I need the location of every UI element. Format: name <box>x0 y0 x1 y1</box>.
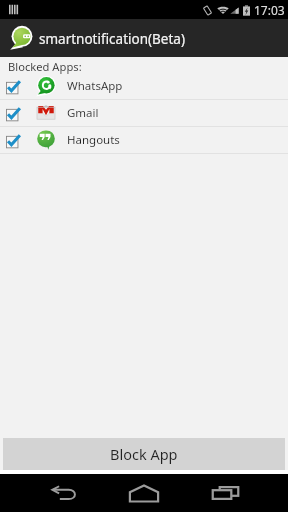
button[interactable]: Block App <box>3 438 285 470</box>
staticText: 17:03 <box>254 2 285 18</box>
button[interactable]: Back <box>32 474 96 512</box>
button[interactable]: WhatsApp <box>0 72 288 99</box>
button[interactable]: Gmail <box>0 99 288 126</box>
staticText: WhatsApp <box>67 78 123 94</box>
staticText: Blocked Apps: <box>8 59 82 74</box>
staticText: Gmail <box>67 105 99 121</box>
button[interactable]: Hangouts <box>0 126 288 153</box>
button[interactable]: Home <box>112 474 176 512</box>
button[interactable]: Recent apps <box>193 474 257 512</box>
staticText: smartnotification(Beta) <box>39 30 185 48</box>
staticText: Block App <box>110 444 178 464</box>
staticText: Hangouts <box>67 132 120 148</box>
